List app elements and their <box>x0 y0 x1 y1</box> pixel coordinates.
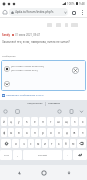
staticText: ш <box>57 120 60 124</box>
button[interactable]: Back <box>14 167 25 178</box>
staticText: п <box>34 131 36 135</box>
staticText: ф <box>3 131 6 135</box>
staticText: х <box>82 120 84 124</box>
button[interactable]: Search <box>2 108 9 115</box>
button[interactable]: 4pda.to/forum/index.php?s <box>9 8 68 16</box>
button[interactable]: а <box>23 128 30 137</box>
staticText: ?123 <box>4 154 9 157</box>
staticText: е <box>34 120 36 124</box>
button[interactable]: й <box>1 117 7 126</box>
staticText: у <box>18 120 20 124</box>
button[interactable]: ы <box>8 128 14 137</box>
button[interactable]: ж <box>71 128 78 137</box>
button[interactable]: и <box>42 139 48 148</box>
button[interactable]: х <box>79 117 86 126</box>
staticText: Sandy <box>2 33 11 37</box>
button[interactable]: Clear text <box>71 66 79 74</box>
button[interactable]: Backspace <box>77 139 86 148</box>
staticText: 31 июля 2021, 09:47 <box>15 33 40 37</box>
staticText: с <box>30 142 32 146</box>
staticText: г <box>50 120 52 124</box>
button[interactable]: ч <box>20 139 27 148</box>
button[interactable]: ?123 <box>0 150 12 160</box>
staticText: р <box>42 131 44 135</box>
button[interactable]: Tabs <box>70 9 77 16</box>
button[interactable]: щ <box>63 117 70 126</box>
button[interactable]: з <box>71 117 78 126</box>
button[interactable]: Enter <box>73 150 87 160</box>
staticText: й <box>3 120 5 124</box>
button[interactable]: ю <box>70 139 76 148</box>
staticText: з <box>74 120 76 124</box>
staticText: , <box>17 153 18 157</box>
button[interactable]: р <box>39 128 46 137</box>
button[interactable]: Отправить <box>46 102 63 105</box>
button[interactable]: у <box>15 117 22 126</box>
button[interactable]: More options <box>79 9 86 16</box>
staticText: д <box>66 131 68 135</box>
button[interactable]: [url=https://4pda.to/forum/] <box>1 60 86 91</box>
button[interactable]: GIF <box>56 108 63 115</box>
button[interactable]: Shift <box>1 139 11 148</box>
staticText: т <box>51 142 53 146</box>
button[interactable]: Русский <box>23 150 62 160</box>
staticText: [url=https://4pda.to/forum/] <box>11 64 45 67</box>
staticText: Зачем всё это, если, наверняка, никто не… <box>2 40 70 44</box>
staticText: а <box>26 131 28 135</box>
button[interactable]: к <box>23 117 30 126</box>
button[interactable]: Прикрепить изображение к посту <box>2 94 44 97</box>
staticText: . <box>67 153 68 157</box>
button[interactable]: э <box>79 128 86 137</box>
button[interactable]: ф <box>1 128 7 137</box>
staticText: Предложение <box>27 102 43 105</box>
staticText: Сообщение <box>2 54 16 57</box>
staticText: н <box>42 120 44 124</box>
button[interactable]: е <box>31 117 38 126</box>
button[interactable]: Stickers <box>14 108 21 115</box>
button[interactable]: б <box>63 139 69 148</box>
staticText: б <box>65 142 67 146</box>
button[interactable]: г <box>47 117 54 126</box>
staticText: ь <box>58 142 60 146</box>
button[interactable]: п <box>31 128 38 137</box>
button[interactable]: я <box>12 139 19 148</box>
staticText: 9:48 <box>79 2 85 6</box>
staticText: о <box>50 131 52 135</box>
button[interactable]: т <box>49 139 55 148</box>
staticText: 4pda.to/forum/index.php?s <box>15 10 64 14</box>
staticText: к <box>26 120 28 124</box>
staticText: м <box>37 142 40 146</box>
button[interactable]: м <box>35 139 41 148</box>
button[interactable]: Предложение <box>25 102 45 105</box>
staticText: ы <box>10 131 13 135</box>
button[interactable]: Expand <box>3 80 10 87</box>
button[interactable]: ь <box>56 139 62 148</box>
staticText: л <box>58 131 60 135</box>
button[interactable]: в <box>15 128 22 137</box>
staticText: Прикрепить изображение к посту <box>6 94 44 97</box>
button[interactable]: д <box>63 128 70 137</box>
button[interactable]: Hide keyboard <box>63 167 74 178</box>
staticText: Отправить <box>48 102 61 105</box>
button[interactable]: н <box>39 117 46 126</box>
button[interactable]: , <box>13 150 22 160</box>
button[interactable]: л <box>55 128 62 137</box>
button[interactable]: Home <box>38 167 49 178</box>
staticText: ю <box>72 142 75 146</box>
button[interactable]: Clipboard <box>68 108 75 115</box>
button[interactable]: о <box>47 128 54 137</box>
button[interactable]: Home <box>1 8 9 16</box>
staticText: 100% <box>67 2 75 6</box>
staticText: [url=https://4pda.to/f/] <box>11 68 38 71</box>
button[interactable]: ш <box>55 117 62 126</box>
button[interactable]: с <box>28 139 34 148</box>
staticText: в <box>18 131 20 135</box>
button[interactable]: ц <box>8 117 14 126</box>
staticText: щ <box>65 120 68 124</box>
button[interactable]: Collapse <box>78 108 85 115</box>
